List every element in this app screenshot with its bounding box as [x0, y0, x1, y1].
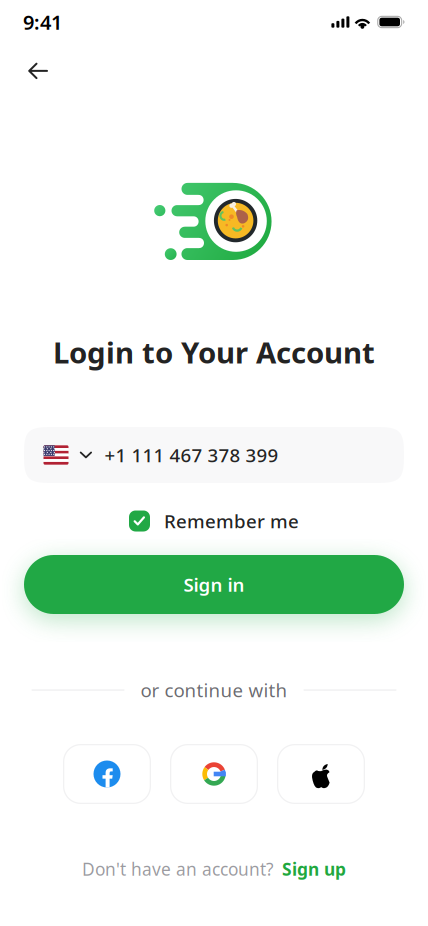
- staticText: Don't have an account?: [82, 857, 274, 880]
- staticText: or continue with: [140, 678, 287, 702]
- button[interactable]: Continue with Apple: [277, 744, 365, 804]
- button[interactable]: Back: [16, 49, 60, 93]
- button[interactable]: Sign in: [24, 555, 404, 614]
- button[interactable]: Remember me: [125, 504, 303, 538]
- staticText: Sign up: [282, 857, 346, 880]
- staticText: Remember me: [164, 509, 299, 533]
- button[interactable]: Sign up: [274, 857, 346, 880]
- staticText: Login to Your Account: [53, 332, 375, 371]
- button[interactable]: Continue with Facebook: [63, 744, 151, 804]
- button[interactable]: Continue with Google: [170, 744, 258, 804]
- staticText: +1 111 467 378 399: [104, 443, 278, 467]
- button[interactable]: Phone number, +1 111 467 378 399: [24, 427, 404, 483]
- staticText: 9:41: [23, 9, 62, 35]
- staticText: Sign in: [183, 572, 244, 597]
